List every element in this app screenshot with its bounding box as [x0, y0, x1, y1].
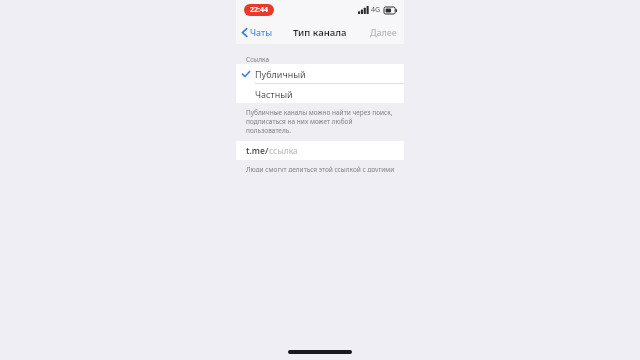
staticText: Тип канала [293, 26, 347, 39]
staticText: Ссылка [246, 55, 270, 64]
button[interactable]: t.me/ [236, 141, 404, 160]
staticText: ссылка [269, 145, 298, 157]
button[interactable]: Чаты [236, 22, 278, 42]
button[interactable]: Частный [236, 84, 404, 103]
staticText: t.me/ [246, 145, 269, 157]
staticText: 22:44 [250, 5, 268, 15]
staticText: Чаты [250, 26, 272, 38]
button[interactable]: Далее [363, 22, 404, 42]
staticText: Люди смогут делиться этой ссылкой с друг… [246, 165, 396, 172]
staticText: Публичный [255, 68, 306, 80]
staticText: Публичные каналы можно найти через поиск… [246, 108, 396, 135]
staticText: Частный [255, 88, 293, 100]
button[interactable]: Публичный [236, 64, 404, 83]
staticText: 4G [371, 5, 381, 15]
staticText: Далее [370, 26, 397, 38]
